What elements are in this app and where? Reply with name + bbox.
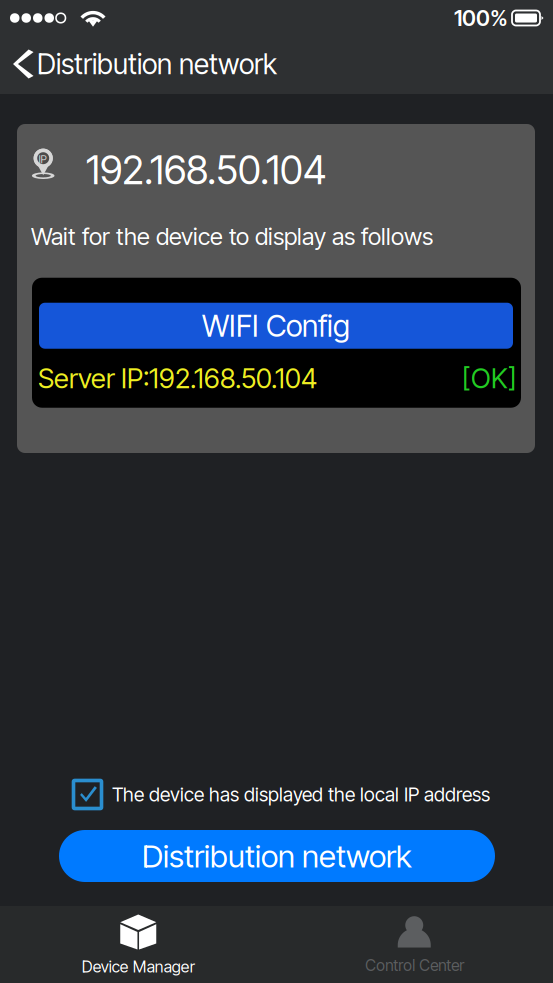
staticText: 100%: [454, 5, 508, 31]
button[interactable]: Control Center: [276, 906, 553, 983]
staticText: [OK]: [462, 362, 517, 395]
staticText: 192.168.50.104: [86, 146, 326, 194]
staticText: Server IP:192.168.50.104: [38, 362, 317, 395]
staticText: The device has displayed the local IP ad…: [112, 783, 490, 806]
staticText: Distribution network: [142, 837, 412, 875]
staticText: Device Manager: [82, 957, 195, 976]
staticText: IP: [38, 153, 46, 166]
staticText: Wait for the device to display as follow…: [31, 222, 433, 251]
button[interactable]: Distribution network: [59, 830, 495, 882]
staticText: Distribution network: [37, 47, 277, 81]
button[interactable]: Device Manager: [0, 906, 276, 983]
button[interactable]: WIFI Config: [32, 278, 521, 349]
staticText: Control Center: [365, 956, 464, 975]
button[interactable]: The device has displayed the local IP ad…: [67, 775, 496, 814]
button[interactable]: Distribution network: [0, 35, 287, 93]
staticText: WIFI Config: [202, 308, 350, 344]
